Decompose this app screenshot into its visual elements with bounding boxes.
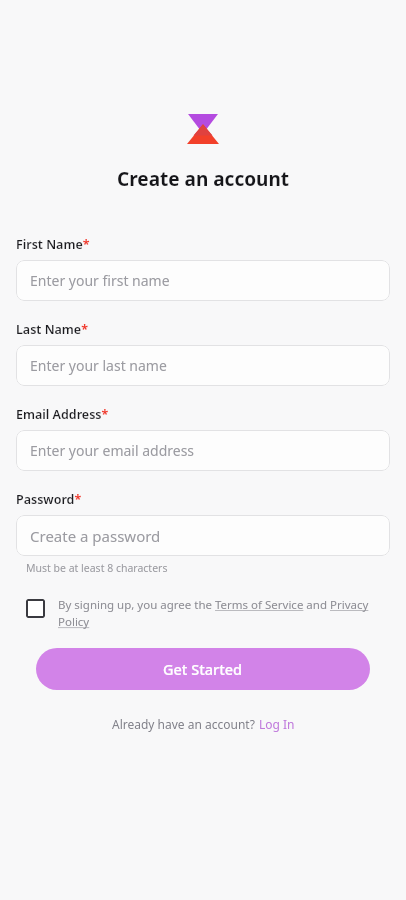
staticText: Must be at least 8 characters — [26, 561, 168, 575]
button[interactable]: Accept terms — [26, 597, 390, 630]
staticText: Enter your last name — [30, 356, 167, 375]
other: Accept terms — [26, 599, 45, 618]
button[interactable]: Enter your last name — [16, 345, 390, 386]
staticText: Log In — [259, 716, 295, 732]
staticText: By signing up, you agree the Terms of Se… — [58, 597, 390, 630]
button[interactable]: Already have an account? — [112, 716, 295, 732]
staticText: Password* — [16, 491, 82, 508]
button[interactable]: Enter your email address — [16, 430, 390, 471]
staticText: Email Address* — [16, 406, 109, 423]
button[interactable]: Enter your first name — [16, 260, 390, 301]
staticText: Last Name* — [16, 321, 88, 338]
staticText: Enter your first name — [30, 271, 170, 290]
staticText: Create an account — [16, 166, 390, 192]
staticText: Create a password — [30, 526, 161, 546]
staticText: Already have an account? — [112, 716, 259, 732]
staticText: Enter your email address — [30, 441, 195, 460]
staticText: First Name* — [16, 236, 90, 253]
button[interactable]: Get Started — [36, 648, 370, 690]
staticText: Get Started — [163, 659, 243, 679]
button[interactable]: Create a password — [16, 515, 390, 556]
